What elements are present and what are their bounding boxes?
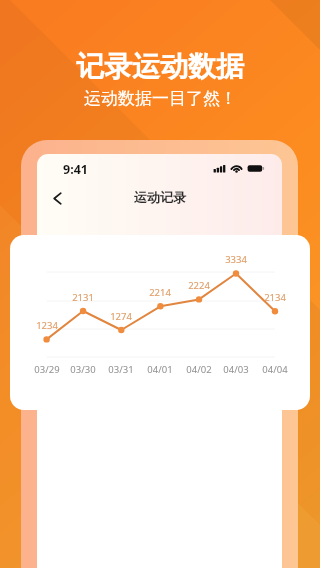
staticText: 04/04: [262, 363, 288, 375]
staticText: 04/03: [223, 363, 249, 375]
staticText: 04/02: [186, 363, 212, 375]
staticText: 2224: [188, 279, 210, 291]
staticText: 03/30: [70, 363, 96, 375]
staticText: 3334: [225, 253, 247, 265]
staticText: 2134: [264, 291, 286, 303]
button[interactable]: Back: [39, 185, 71, 217]
staticText: 2214: [149, 286, 171, 298]
staticText: 03/31: [108, 363, 134, 375]
staticText: 1234: [36, 319, 58, 331]
staticText: 2131: [72, 291, 94, 303]
staticText: 1274: [110, 310, 132, 322]
staticText: 04/01: [147, 363, 173, 375]
staticText: 9:41: [63, 161, 88, 178]
staticText: 运动数据一目了然！: [84, 88, 237, 109]
staticText: 记录运动数据: [76, 49, 244, 84]
staticText: 运动记录: [134, 189, 186, 205]
staticText: 03/29: [34, 363, 60, 375]
